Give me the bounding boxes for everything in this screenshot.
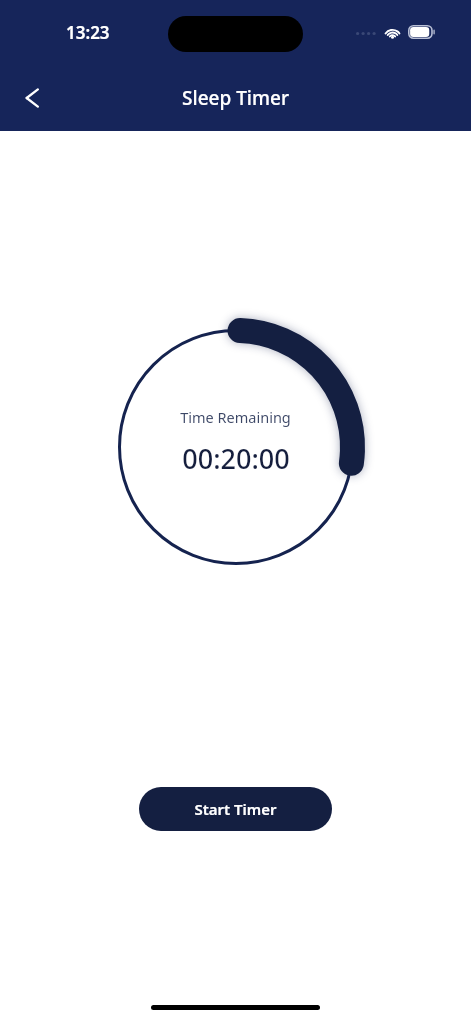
staticText: Time Remaining	[180, 407, 291, 427]
staticText: Sleep Timer	[182, 85, 289, 111]
button[interactable]: Back	[10, 76, 54, 120]
staticText: Start Timer	[194, 799, 277, 819]
staticText: 00:20:00	[182, 440, 290, 477]
button[interactable]: Start Timer	[139, 787, 332, 831]
staticText: 13:23	[66, 21, 110, 44]
